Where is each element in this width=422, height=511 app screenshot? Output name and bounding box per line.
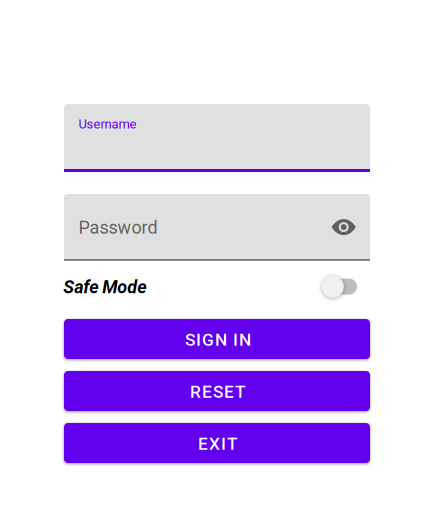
button[interactable]: EXIT — [64, 423, 370, 463]
button[interactable]: Safe Mode — [322, 274, 358, 300]
staticText: SIGN IN — [185, 330, 251, 350]
button[interactable]: SIGN IN — [64, 319, 370, 359]
button[interactable]: Password — [64, 194, 370, 259]
staticText: Safe Mode — [63, 276, 146, 298]
staticText: Username — [78, 116, 136, 132]
staticText: Password — [78, 217, 157, 238]
button[interactable]: Show password — [322, 205, 366, 249]
staticText: EXIT — [198, 434, 238, 454]
button[interactable]: RESET — [64, 371, 370, 411]
staticText: RESET — [190, 382, 246, 402]
button[interactable]: Username — [64, 104, 370, 169]
